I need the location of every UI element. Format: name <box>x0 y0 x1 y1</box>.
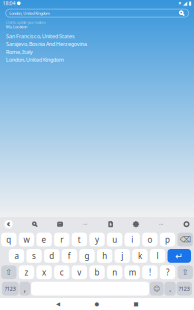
staticText: l <box>156 251 158 261</box>
button[interactable]: Back <box>2 217 15 231</box>
button[interactable]: ?123 <box>2 282 19 295</box>
button[interactable]: ? <box>160 265 175 279</box>
staticText: a <box>14 251 18 261</box>
staticText: ■ <box>133 301 138 307</box>
button[interactable]: v <box>72 265 87 279</box>
staticText: Sarajevo, Bosnia And Herzegovina <box>6 40 87 48</box>
staticText: r <box>60 234 63 245</box>
staticText: London, United Kingdom <box>6 56 64 63</box>
staticText: b <box>94 267 99 278</box>
button[interactable]: Home <box>86 298 108 310</box>
staticText: 18:04 <box>2 0 15 7</box>
button[interactable]: l <box>150 249 165 263</box>
button[interactable]: g <box>79 249 95 263</box>
staticText: ☺ <box>153 285 160 292</box>
button[interactable]: Stickers <box>55 217 66 231</box>
staticText: ▮ <box>188 0 191 6</box>
button[interactable]: i <box>125 233 140 246</box>
staticText: San Francisco, United States <box>6 33 75 40</box>
button[interactable]: q <box>1 233 16 246</box>
staticText: e <box>42 234 47 245</box>
button[interactable]: j <box>115 249 130 263</box>
button[interactable]: London, United Kingdom <box>0 58 191 62</box>
button[interactable]: b <box>89 265 105 279</box>
button[interactable]: k <box>132 249 148 263</box>
staticText: ? <box>166 267 169 278</box>
button[interactable]: London, United Kingdom <box>6 9 189 17</box>
staticText: , <box>24 283 26 294</box>
button[interactable]: f <box>62 249 77 263</box>
button[interactable]: Voice input <box>181 217 192 231</box>
staticText: ◀ <box>56 301 60 307</box>
staticText: z <box>24 267 28 278</box>
staticText: ⇧ <box>5 268 12 277</box>
button[interactable]: s <box>26 249 42 263</box>
button[interactable] <box>31 282 149 295</box>
button[interactable]: ↵ <box>167 249 191 263</box>
staticText: ▾ <box>178 0 181 6</box>
staticText: k <box>138 251 142 261</box>
button[interactable]: h <box>97 249 112 263</box>
button[interactable]: x <box>36 265 52 279</box>
button[interactable]: ⌫ <box>177 233 193 246</box>
staticText: j <box>121 251 123 261</box>
staticText: ↵ <box>175 251 183 261</box>
staticText: . <box>169 283 171 294</box>
button[interactable]: Click to update your location <box>0 21 191 29</box>
button[interactable]: ?123 <box>176 282 192 295</box>
button[interactable]: Settings <box>130 217 141 231</box>
staticText: n <box>112 267 117 278</box>
button[interactable]: n <box>107 265 122 279</box>
staticText: p <box>165 234 170 245</box>
staticText: ⌫ <box>180 235 191 244</box>
button[interactable]: w <box>19 233 34 246</box>
staticText: i <box>131 234 133 245</box>
button[interactable]: . <box>164 282 176 295</box>
button[interactable]: Search <box>29 217 40 231</box>
staticText: Rome, Italy <box>6 48 33 55</box>
staticText: Click to update your location <box>6 21 46 24</box>
staticText: ● <box>94 301 99 307</box>
staticText: y <box>95 234 99 245</box>
button[interactable]: ⇧ <box>177 265 193 279</box>
staticText: u <box>112 234 117 245</box>
staticText: My Location <box>6 24 27 29</box>
staticText: m <box>129 267 136 278</box>
button[interactable]: z <box>19 265 34 279</box>
staticText: c <box>60 267 64 278</box>
button[interactable]: Sarajevo, Bosnia And Herzegovina <box>0 42 191 46</box>
button[interactable]: u <box>107 233 122 246</box>
staticText: t <box>78 234 81 245</box>
button[interactable]: m <box>125 265 140 279</box>
staticText: ⇧ <box>182 268 189 277</box>
button[interactable]: Clipboard <box>105 217 116 231</box>
staticText: g <box>84 251 89 261</box>
staticText: ?123 <box>5 285 16 292</box>
button[interactable]: GIF <box>80 217 91 231</box>
staticText: ! <box>149 267 151 278</box>
button[interactable]: Rome, Italy <box>0 50 191 54</box>
button[interactable]: ⇧ <box>1 265 16 279</box>
button[interactable]: c <box>54 265 69 279</box>
staticText: ?123 <box>179 285 190 292</box>
button[interactable]: o <box>142 233 158 246</box>
button[interactable]: p <box>160 233 175 246</box>
staticText: s <box>32 251 36 261</box>
button[interactable]: t <box>72 233 87 246</box>
button[interactable]: Recents <box>125 298 147 310</box>
button[interactable]: Back <box>47 298 69 310</box>
button[interactable]: More <box>156 217 167 231</box>
button[interactable]: San Francisco, United States <box>0 34 191 38</box>
button[interactable]: r <box>54 233 69 246</box>
button[interactable]: ! <box>142 265 158 279</box>
button[interactable]: y <box>89 233 105 246</box>
button[interactable]: , <box>19 282 30 295</box>
button[interactable]: e <box>36 233 52 246</box>
button[interactable]: d <box>44 249 59 263</box>
button[interactable]: a <box>9 249 24 263</box>
staticText: f <box>68 251 71 261</box>
staticText: London, United Kingdom <box>9 10 50 16</box>
staticText: d <box>49 251 54 261</box>
button[interactable]: ☺ <box>150 282 164 295</box>
